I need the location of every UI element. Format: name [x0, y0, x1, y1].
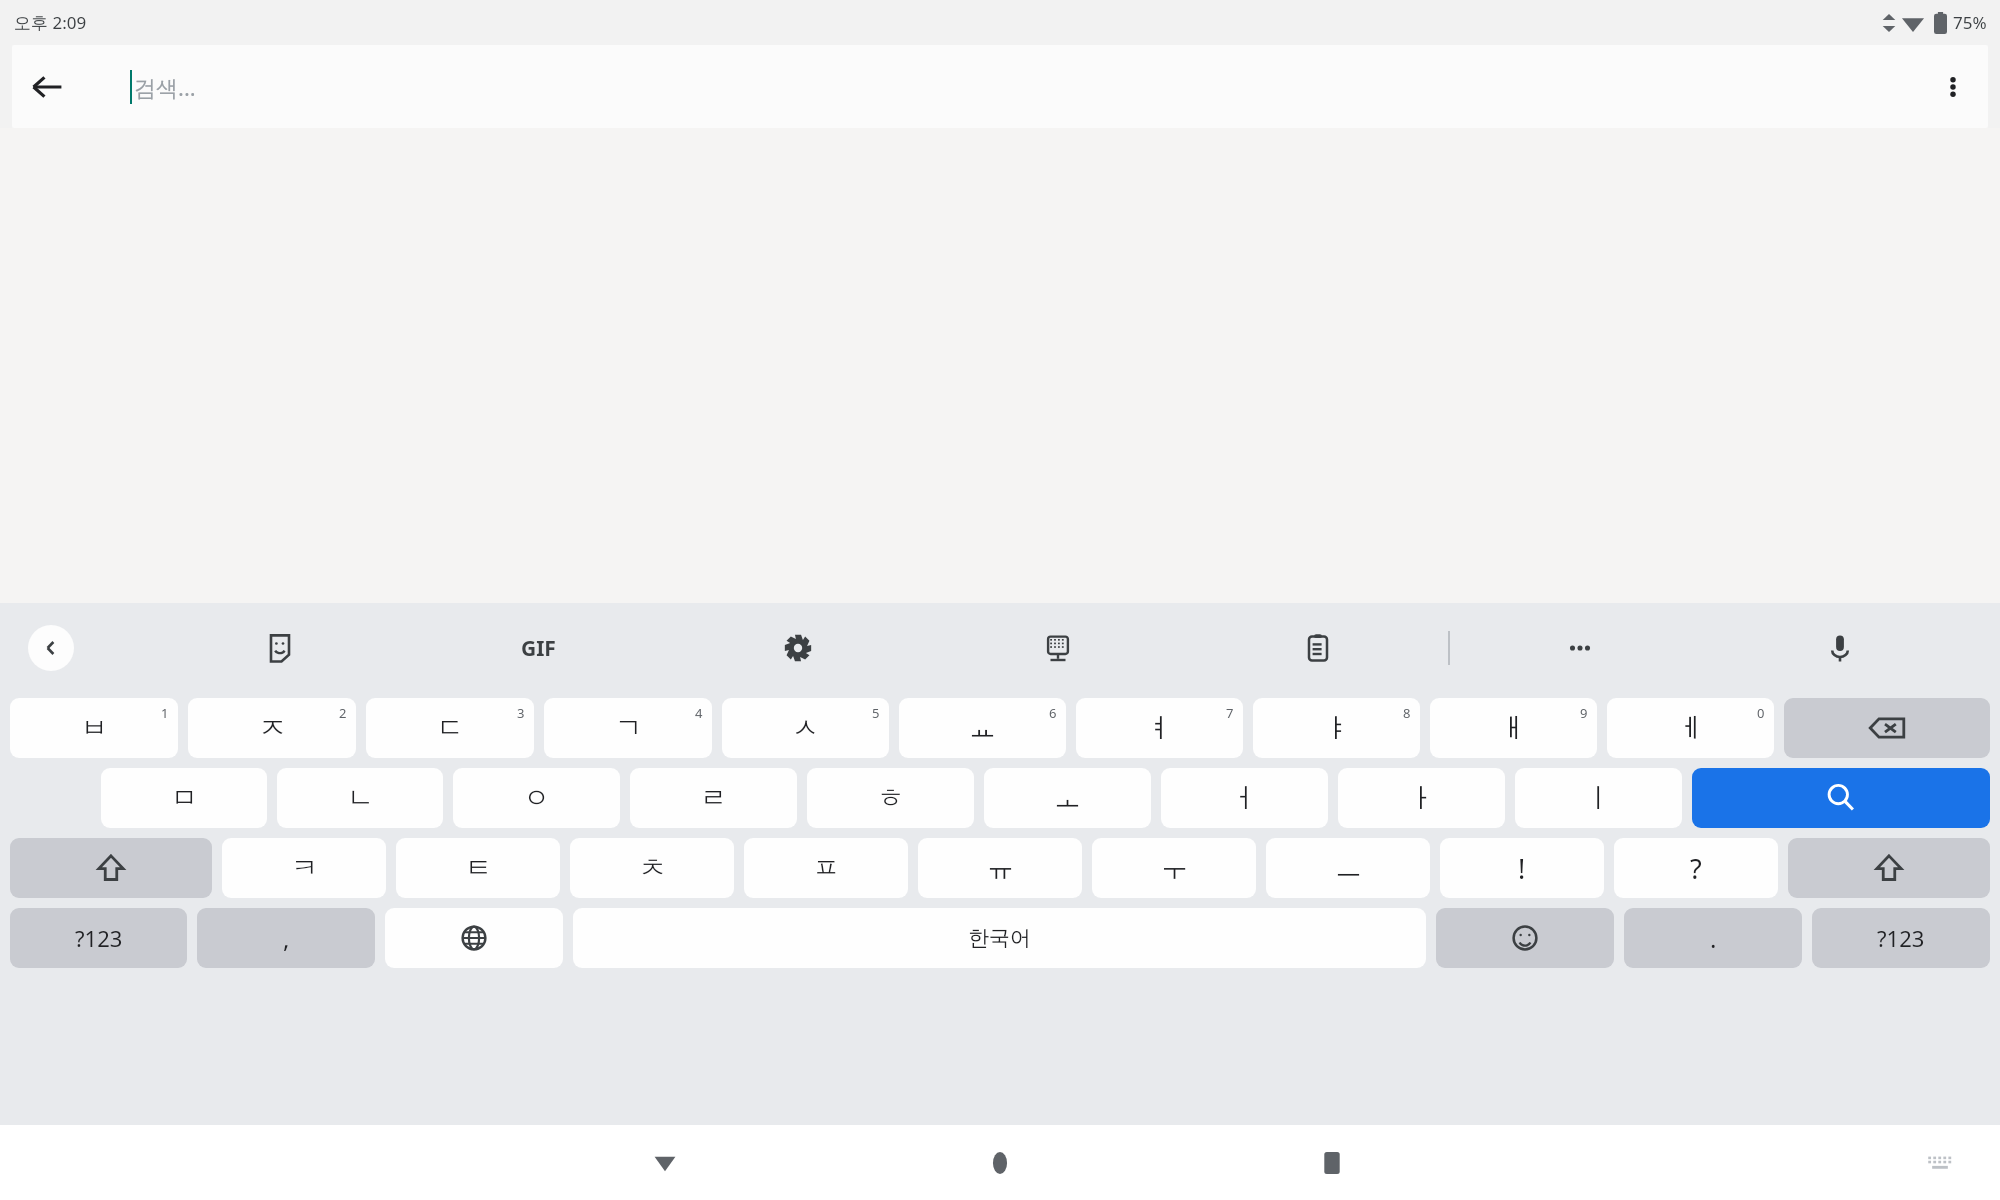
staticText: ㅈ [259, 711, 286, 745]
button[interactable]: ㅣ [1515, 768, 1682, 828]
staticText: 검색... [134, 72, 196, 102]
button[interactable]: ㅍ [744, 838, 908, 898]
button[interactable]: ㅎ [807, 768, 974, 828]
staticText: 7 [1226, 704, 1234, 722]
staticText: 5 [872, 704, 880, 722]
button[interactable]: ㅗ [984, 768, 1151, 828]
staticText: 6 [1049, 704, 1057, 722]
staticText: ㅂ [81, 711, 108, 745]
button[interactable]: ㅅ [722, 698, 889, 758]
button[interactable]: ㅈ [188, 698, 356, 758]
staticText: 4 [695, 704, 703, 722]
staticText: ! [1518, 850, 1526, 887]
button[interactable]: ㅁ [101, 768, 267, 828]
staticText: ㅡ [1335, 851, 1362, 885]
button[interactable]: ㅛ [899, 698, 1066, 758]
button[interactable]: Back [545, 1125, 785, 1200]
button[interactable]: ㄱ [544, 698, 712, 758]
staticText: ㅌ [465, 851, 492, 885]
staticText: ?123 [1877, 923, 1925, 953]
staticText: 8 [1403, 704, 1411, 722]
staticText: 1 [161, 704, 169, 722]
staticText: 3 [517, 704, 525, 722]
button[interactable]: ! [1440, 838, 1604, 898]
button[interactable]: Recents [1212, 1125, 1452, 1200]
button[interactable]: ㅏ [1338, 768, 1505, 828]
button[interactable]: GIF [409, 603, 668, 693]
staticText: ㅎ [877, 781, 904, 815]
button[interactable]: Home [880, 1125, 1120, 1200]
staticText: ㅍ [813, 851, 840, 885]
staticText: , [283, 922, 290, 955]
staticText: ㅑ [1323, 711, 1350, 745]
staticText: 2 [339, 704, 347, 722]
staticText: ㅠ [987, 851, 1014, 885]
button[interactable]: ㅡ [1266, 838, 1430, 898]
staticText: ㅗ [1054, 781, 1081, 815]
button[interactable]: ㅐ [1430, 698, 1597, 758]
button[interactable]: Shift [10, 838, 212, 898]
button[interactable]: Emoji [1436, 908, 1614, 968]
button[interactable]: Backspace [1784, 698, 1990, 758]
staticText: ㅏ [1408, 781, 1435, 815]
staticText: 한국어 [968, 925, 1031, 951]
staticText: ㅓ [1231, 781, 1258, 815]
button[interactable]: . [1624, 908, 1802, 968]
staticText: ?123 [75, 923, 123, 953]
button[interactable]: 한국어 [573, 908, 1426, 968]
button[interactable]: Clipboard [1188, 603, 1448, 693]
staticText: ㅛ [969, 711, 996, 745]
button[interactable]: Voice input [1710, 603, 1970, 693]
staticText: . [1710, 922, 1717, 955]
button[interactable]: Search [1692, 768, 1990, 828]
button[interactable]: ㄷ [366, 698, 534, 758]
button[interactable]: Settings [668, 603, 928, 693]
button[interactable]: More [1450, 603, 1710, 693]
button[interactable]: Expand [28, 625, 74, 671]
staticText: ㅇ [523, 781, 550, 815]
staticText: ㅣ [1585, 781, 1612, 815]
staticText: ㄴ [347, 781, 374, 815]
button[interactable]: ㅜ [1092, 838, 1256, 898]
staticText: ㅅ [792, 711, 819, 745]
staticText: ㅜ [1161, 851, 1188, 885]
button[interactable]: ㅊ [570, 838, 734, 898]
staticText: 오후 2:09 [14, 11, 87, 34]
staticText: ㅕ [1146, 711, 1173, 745]
button[interactable]: Switch keyboard [1880, 1125, 2000, 1200]
staticText: 9 [1580, 704, 1588, 722]
button[interactable]: Keyboard layout [928, 603, 1188, 693]
button[interactable]: ㅔ [1607, 698, 1774, 758]
button[interactable]: ㄴ [277, 768, 443, 828]
button[interactable]: ㅑ [1253, 698, 1420, 758]
button[interactable]: Change language [385, 908, 563, 968]
button[interactable]: Shift [1788, 838, 1990, 898]
staticText: ? [1690, 850, 1702, 887]
staticText: ㄹ [700, 781, 727, 815]
staticText: ㅐ [1500, 711, 1527, 745]
staticText: ㅋ [291, 851, 318, 885]
staticText: GIF [521, 634, 556, 663]
button[interactable]: ㅠ [918, 838, 1082, 898]
button[interactable]: ㅇ [453, 768, 620, 828]
staticText: ㅔ [1677, 711, 1704, 745]
staticText: ㄷ [437, 711, 464, 745]
staticText: ㅊ [639, 851, 666, 885]
button[interactable]: ? [1614, 838, 1778, 898]
staticText: 0 [1757, 704, 1765, 722]
button[interactable]: ㅂ [10, 698, 178, 758]
button[interactable]: ?123 [10, 908, 187, 968]
staticText: 75% [1953, 11, 1987, 34]
staticText: ㅁ [171, 781, 198, 815]
staticText: ㄱ [615, 711, 642, 745]
button[interactable]: ㅌ [396, 838, 560, 898]
button[interactable]: Back [12, 52, 82, 122]
button[interactable]: Stickers [150, 603, 409, 693]
button[interactable]: ?123 [1812, 908, 1990, 968]
button[interactable]: ㅋ [222, 838, 386, 898]
button[interactable]: More options [1918, 52, 1988, 122]
button[interactable]: ㅕ [1076, 698, 1243, 758]
button[interactable]: , [197, 908, 375, 968]
button[interactable]: ㅓ [1161, 768, 1328, 828]
button[interactable]: ㄹ [630, 768, 797, 828]
